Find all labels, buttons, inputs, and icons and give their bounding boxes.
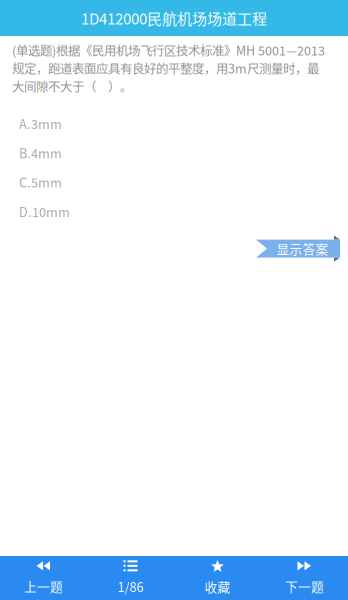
staticText: 显示答案 — [276, 239, 328, 258]
staticText: B.4mm — [19, 144, 62, 162]
staticText: D.10mm — [19, 202, 70, 220]
staticText: 下一题 — [285, 577, 324, 595]
button[interactable]: 显示答案 — [256, 240, 340, 258]
button[interactable]: 下一题 — [261, 556, 348, 600]
button[interactable]: 收藏 — [174, 556, 261, 600]
button[interactable]: 1/86 — [87, 556, 174, 600]
staticText: (单选题)根据《民用机场飞行区技术标准》MH 5001—2013规定，跑道表面应… — [12, 41, 325, 95]
staticText: 上一题 — [24, 577, 63, 595]
staticText: A.3mm — [19, 114, 62, 132]
staticText: 1D412000民航机场场道工程 — [81, 7, 267, 29]
staticText: 收藏 — [204, 577, 230, 596]
staticText: 1/86 — [117, 577, 143, 596]
staticText: C.5mm — [19, 173, 62, 191]
button[interactable]: 上一题 — [0, 556, 87, 600]
